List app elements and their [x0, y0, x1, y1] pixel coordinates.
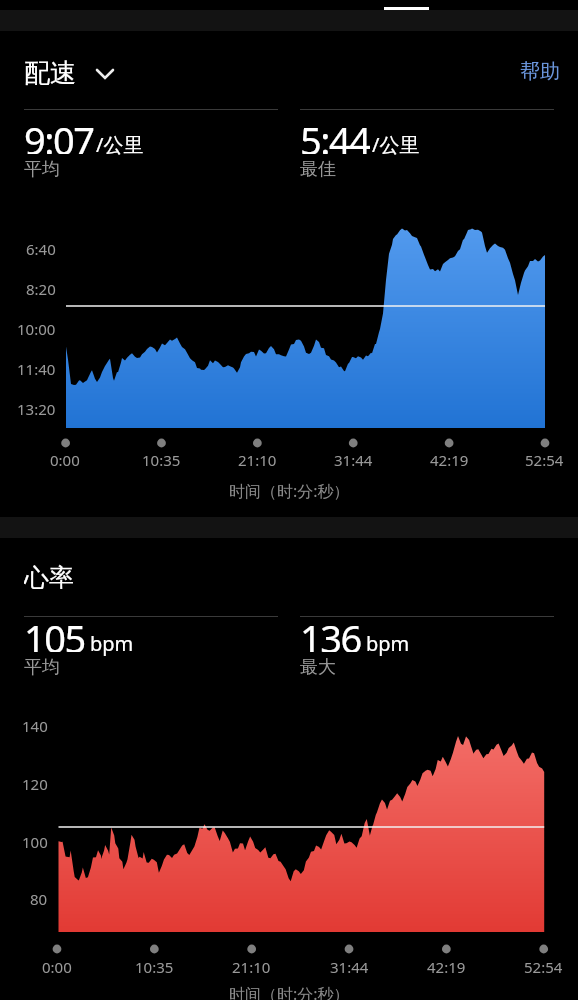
staticText: 平均	[24, 656, 60, 679]
staticText: 52:54	[524, 957, 563, 977]
staticText: 21:10	[232, 957, 271, 977]
staticText: 80	[30, 889, 48, 909]
staticText: 31:44	[330, 957, 369, 977]
staticText: 31:44	[334, 450, 373, 470]
staticText: 105	[24, 612, 85, 652]
staticText: 100	[22, 832, 48, 852]
staticText: 9:07	[24, 114, 94, 154]
staticText: 时间（时:分:秒）	[229, 983, 350, 1000]
staticText: bpm	[90, 630, 134, 657]
staticText: bpm	[366, 630, 410, 657]
button[interactable]: 配速	[16, 55, 126, 91]
button[interactable]: 帮助	[480, 56, 560, 86]
staticText: 42:19	[427, 957, 466, 977]
staticText: 136	[300, 612, 361, 652]
staticText: 心率	[24, 562, 74, 592]
staticText: 配速	[24, 57, 76, 90]
staticText: 0:00	[50, 450, 80, 470]
staticText: 最佳	[300, 158, 336, 181]
staticText: 10:00	[17, 319, 56, 339]
staticText: 0:00	[42, 957, 72, 977]
staticText: 10:35	[135, 957, 174, 977]
staticText: 时间（时:分:秒）	[229, 480, 350, 502]
staticText: 140	[22, 716, 48, 736]
staticText: 21:10	[238, 450, 277, 470]
staticText: /公里	[96, 131, 144, 158]
staticText: 6:40	[26, 239, 56, 259]
staticText: /公里	[372, 131, 420, 158]
staticText: 42:19	[430, 450, 469, 470]
staticText: 10:35	[142, 450, 181, 470]
staticText: 11:40	[17, 359, 56, 379]
button[interactable]: 心率	[16, 562, 126, 592]
staticText: 120	[22, 774, 48, 794]
staticText: 平均	[24, 158, 60, 181]
staticText: 13:20	[17, 399, 56, 419]
staticText: 5:44	[300, 114, 370, 154]
staticText: 最大	[300, 656, 336, 679]
staticText: 帮助	[520, 59, 560, 84]
staticText: 8:20	[26, 279, 56, 299]
staticText: 52:54	[525, 450, 564, 470]
